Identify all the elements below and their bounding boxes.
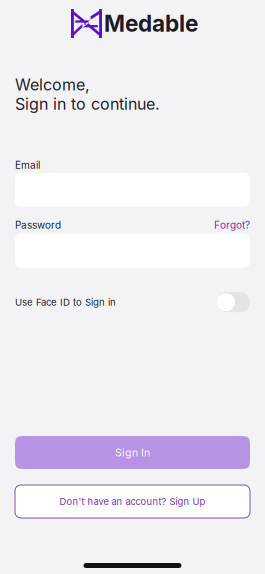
staticText: Sign Up <box>169 496 205 507</box>
button[interactable]: Forgot? <box>214 220 250 231</box>
staticText: Welcome, <box>15 75 90 94</box>
staticText: Don't have an account? <box>59 496 166 507</box>
staticText: Password <box>15 219 61 231</box>
button[interactable]: Don't have an account? <box>15 485 250 518</box>
staticText: Sign In <box>115 446 150 459</box>
staticText: Use Face ID to Sign in <box>15 296 116 308</box>
staticText: Medable <box>104 10 198 37</box>
button[interactable]: Use Face ID to Sign in <box>217 292 250 312</box>
staticText: Email <box>15 159 40 171</box>
staticText: Sign in to continue. <box>15 94 160 114</box>
button[interactable]: Sign In <box>15 436 250 469</box>
staticText: Forgot? <box>214 219 250 231</box>
